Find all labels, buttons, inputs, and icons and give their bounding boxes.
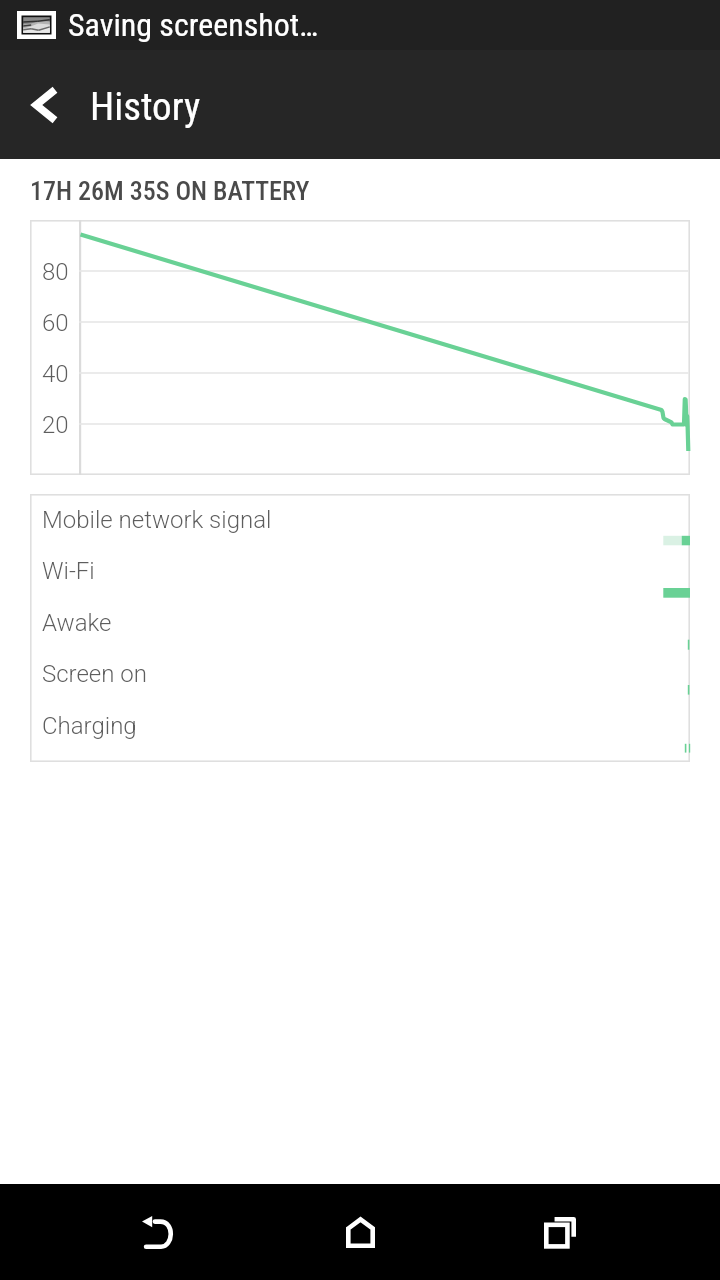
staticText: Mobile network signal	[42, 506, 272, 534]
staticText: History	[90, 84, 201, 130]
staticText: Wi-Fi	[42, 557, 95, 585]
staticText: 80	[42, 258, 69, 286]
staticText: 17H 26M 35S ON BATTERY	[30, 176, 310, 206]
button[interactable]: Saving screenshot…	[0, 0, 720, 50]
button[interactable]: Charging	[30, 705, 690, 747]
button[interactable]: Home	[312, 1184, 408, 1280]
button[interactable]: Navigate up	[0, 50, 90, 159]
button[interactable]: Screen on	[30, 653, 690, 695]
button[interactable]: Recent apps	[512, 1184, 608, 1280]
staticText: Awake	[42, 609, 112, 637]
button[interactable]: Wi-Fi	[30, 550, 690, 592]
button[interactable]: Mobile network signal	[30, 499, 690, 541]
staticText: 60	[42, 309, 69, 337]
staticText: 40	[42, 360, 69, 388]
staticText: Screen on	[42, 660, 147, 688]
staticText: Charging	[42, 712, 137, 740]
staticText: 20	[42, 411, 69, 439]
button[interactable]: Awake	[30, 602, 690, 644]
button[interactable]: Back	[111, 1184, 207, 1280]
staticText: Saving screenshot…	[68, 6, 319, 44]
